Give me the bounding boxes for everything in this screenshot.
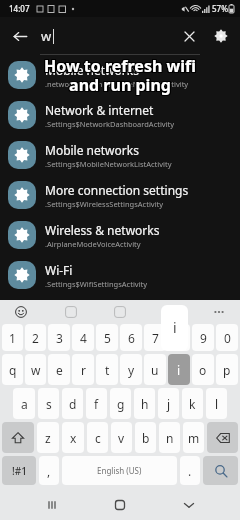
staticText: More connection settings: [45, 182, 189, 198]
button[interactable]: m: [183, 422, 204, 453]
button[interactable]: Settings: [206, 21, 236, 51]
button[interactable]: Hide keyboard: [172, 490, 206, 520]
button[interactable]: p: [216, 354, 238, 385]
button[interactable]: Mobile networks: [0, 55, 240, 95]
button[interactable]: ,: [39, 456, 59, 485]
staticText: 3: [56, 330, 63, 346]
button[interactable]: 3: [48, 324, 70, 351]
button[interactable]: g: [110, 388, 131, 419]
button[interactable]: j: [158, 388, 179, 419]
staticText: .Settings$WifiSettingsActivity: [45, 279, 148, 289]
staticText: .: [188, 463, 192, 479]
button[interactable]: q: [2, 354, 23, 385]
staticText: i: [177, 362, 181, 378]
button[interactable]: i: [168, 354, 190, 385]
button[interactable]: 2: [25, 324, 46, 351]
button[interactable]: 1: [2, 324, 23, 351]
staticText: .Settings$MobileNetworkListActivity: [45, 159, 172, 169]
button[interactable]: v: [111, 422, 132, 453]
button[interactable]: h: [134, 388, 155, 419]
button[interactable]: y: [120, 354, 142, 385]
staticText: !#1: [12, 464, 27, 478]
button[interactable]: u: [144, 354, 166, 385]
staticText: h: [141, 396, 149, 412]
staticText: l: [215, 396, 219, 412]
staticText: r: [81, 362, 86, 378]
staticText: Wi-Fi: [45, 262, 73, 278]
button[interactable]: Back: [4, 20, 36, 52]
button[interactable]: Wi-Fi: [0, 255, 240, 295]
button[interactable]: Search: [203, 456, 238, 485]
staticText: Wireless & networks: [45, 222, 160, 238]
button[interactable]: More options: [210, 303, 228, 321]
button[interactable]: English (US): [62, 456, 177, 485]
button[interactable]: k: [182, 388, 203, 419]
button[interactable]: More connection settings: [0, 175, 240, 215]
button[interactable]: Clear: [174, 21, 204, 51]
staticText: .Settings$NetworkDashboardActivity: [45, 119, 175, 129]
button[interactable]: b: [135, 422, 156, 453]
button[interactable]: f: [86, 388, 107, 419]
staticText: q: [9, 362, 17, 378]
staticText: j: [167, 396, 171, 412]
staticText: English (US): [97, 465, 142, 476]
button[interactable]: !#1: [2, 456, 36, 485]
button[interactable]: a: [13, 388, 35, 419]
button[interactable]: 4: [72, 324, 94, 351]
staticText: k: [189, 396, 196, 412]
button[interactable]: w: [25, 354, 46, 385]
button[interactable]: l: [206, 388, 227, 419]
staticText: Mobile networks: [45, 62, 139, 78]
staticText: 1: [9, 330, 16, 346]
staticText: x: [70, 430, 77, 446]
button[interactable]: 8: [168, 324, 190, 351]
staticText: n: [166, 430, 174, 446]
button[interactable]: 6: [120, 324, 142, 351]
button[interactable]: 0: [216, 324, 238, 351]
button[interactable]: Shift: [2, 422, 34, 453]
staticText: z: [45, 430, 51, 446]
button[interactable]: n: [159, 422, 180, 453]
button[interactable]: Backspace: [207, 422, 238, 453]
staticText: y: [128, 362, 135, 378]
button[interactable]: Network & internet: [0, 95, 240, 135]
staticText: Mobile networks: [45, 142, 139, 158]
staticText: f: [94, 396, 99, 412]
staticText: Network & internet: [45, 102, 154, 118]
staticText: p: [223, 362, 231, 378]
button[interactable]: 7: [144, 324, 166, 351]
button[interactable]: s: [38, 388, 59, 419]
staticText: ,: [47, 463, 51, 479]
staticText: 2: [32, 330, 39, 346]
staticText: w: [31, 362, 41, 378]
staticText: 9: [200, 330, 207, 346]
button[interactable]: .: [180, 456, 200, 485]
button[interactable]: c: [87, 422, 108, 453]
staticText: u: [151, 362, 159, 378]
staticText: d: [69, 396, 77, 412]
button[interactable]: 5: [96, 324, 118, 351]
button[interactable]: t: [96, 354, 118, 385]
button[interactable]: Clipboard: [111, 303, 129, 321]
button[interactable]: 9: [192, 324, 214, 351]
staticText: i: [173, 318, 177, 337]
button[interactable]: Emoji: [12, 303, 30, 321]
button[interactable]: Mobile networks: [0, 135, 240, 175]
button[interactable]: Home: [103, 490, 137, 520]
staticText: 14:07: [9, 3, 30, 14]
button[interactable]: Recents: [35, 490, 69, 520]
button[interactable]: Wireless & networks: [0, 215, 240, 255]
button[interactable]: Voice input: [161, 303, 179, 321]
staticText: w: [41, 27, 52, 45]
button[interactable]: Stickers: [62, 303, 80, 321]
button[interactable]: r: [72, 354, 94, 385]
staticText: 6: [128, 330, 135, 346]
button[interactable]: o: [192, 354, 214, 385]
button[interactable]: d: [62, 388, 83, 419]
button[interactable]: z: [37, 422, 59, 453]
staticText: c: [95, 430, 101, 446]
staticText: g: [117, 396, 125, 412]
button[interactable]: x: [62, 422, 84, 453]
button[interactable]: e: [48, 354, 70, 385]
staticText: s: [46, 396, 52, 412]
